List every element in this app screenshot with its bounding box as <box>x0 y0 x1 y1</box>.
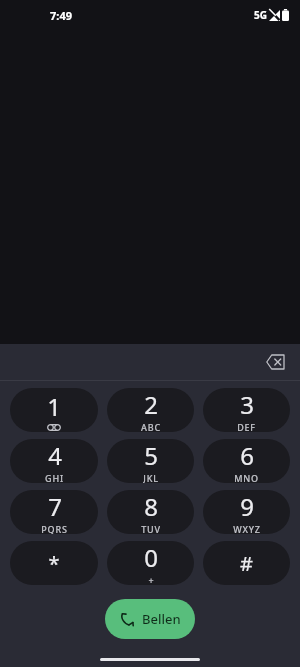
button[interactable]: 3 <box>203 388 290 432</box>
staticText: 6 <box>240 439 254 472</box>
staticText: 9 <box>240 490 254 523</box>
button[interactable]: 6 <box>203 439 290 483</box>
button[interactable]: 9 <box>203 490 290 534</box>
staticText: 8 <box>144 490 158 523</box>
staticText: 3 <box>240 388 254 421</box>
staticText: 2 <box>144 388 158 421</box>
staticText: MNO <box>234 472 259 483</box>
staticText: 7 <box>48 490 62 523</box>
button[interactable]: 1 <box>10 388 98 432</box>
button[interactable]: 2 <box>107 388 194 432</box>
staticText: 5G <box>254 8 267 22</box>
staticText: 1 <box>47 390 61 423</box>
staticText: JKL <box>143 472 159 483</box>
staticText: # <box>240 550 253 577</box>
button[interactable]: Backspace <box>258 345 292 379</box>
staticText: Bellen <box>142 610 181 628</box>
staticText: + <box>148 574 154 585</box>
staticText: PQRS <box>41 523 68 534</box>
staticText: ABC <box>141 421 161 432</box>
button[interactable]: # <box>203 541 290 585</box>
staticText: DEF <box>237 421 256 432</box>
staticText: WXYZ <box>233 523 261 534</box>
staticText: 5 <box>144 439 158 472</box>
staticText: TUV <box>141 523 161 534</box>
button[interactable]: 5 <box>107 439 194 483</box>
staticText: 7:49 <box>50 8 72 23</box>
staticText: * <box>48 550 60 577</box>
button[interactable]: Bellen <box>105 599 195 639</box>
button[interactable]: * <box>10 541 98 585</box>
staticText: 4 <box>48 439 62 472</box>
button[interactable]: 8 <box>107 490 194 534</box>
button[interactable]: 4 <box>10 439 98 483</box>
button[interactable]: 7 <box>10 490 98 534</box>
button[interactable]: 0 <box>107 541 194 585</box>
staticText: 0 <box>144 541 158 574</box>
staticText: GHI <box>45 472 64 483</box>
